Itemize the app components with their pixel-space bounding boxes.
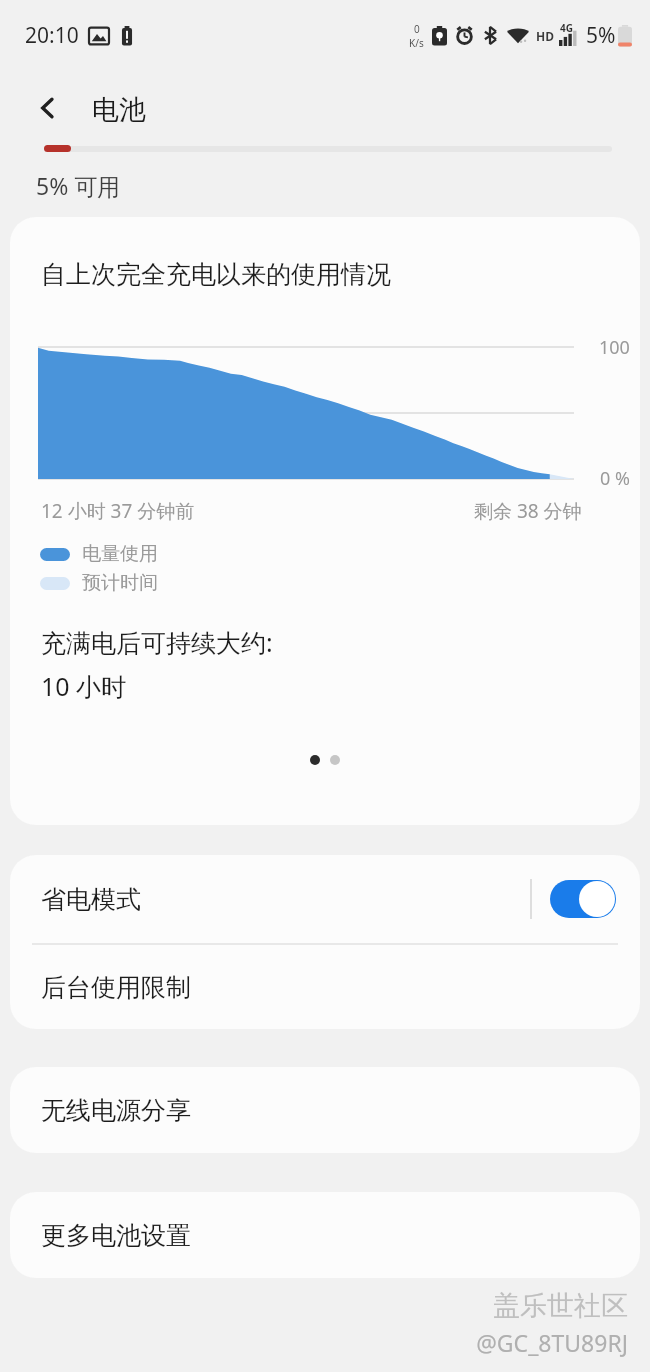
staticText: 电池 xyxy=(92,93,146,127)
staticText: 后台使用限制 xyxy=(41,972,191,1003)
staticText: 更多电池设置 xyxy=(41,1220,191,1251)
staticText: 20:10 xyxy=(25,21,79,50)
staticText: 0 % xyxy=(600,466,630,491)
staticText: 0 xyxy=(414,22,420,36)
staticText: 100 xyxy=(599,335,630,360)
staticText: 无线电源分享 xyxy=(41,1095,191,1126)
button[interactable]: 自上次完全充电以来的使用情况 xyxy=(10,217,640,825)
staticText: 省电模式 xyxy=(41,884,141,915)
button[interactable]: 更多电池设置 xyxy=(10,1192,640,1278)
staticText: 5% xyxy=(586,21,616,50)
staticText: HD xyxy=(536,28,554,44)
button[interactable]: 返回 xyxy=(24,84,72,132)
button[interactable]: 省电模式开关 xyxy=(550,880,616,918)
staticText: 10 小时 xyxy=(41,669,127,703)
staticText: 电量使用 xyxy=(82,542,158,566)
staticText: 自上次完全充电以来的使用情况 xyxy=(41,259,391,290)
button[interactable]: 省电模式 xyxy=(10,855,640,943)
staticText: 预计时间 xyxy=(82,571,158,595)
button[interactable]: 无线电源分享 xyxy=(10,1067,640,1153)
staticText: K/s xyxy=(409,36,424,50)
staticText: 4G xyxy=(560,21,573,35)
staticText: @GC_8TU89RJ xyxy=(476,1327,628,1358)
staticText: 盖乐世社区 xyxy=(493,1289,628,1323)
staticText: 12 小时 37 分钟前 xyxy=(41,498,195,524)
button[interactable]: 后台使用限制 xyxy=(10,945,640,1029)
staticText: 5% 可用 xyxy=(36,170,121,201)
staticText: 充满电后可持续大约: xyxy=(41,625,273,659)
staticText: 剩余 38 分钟 xyxy=(474,498,582,524)
